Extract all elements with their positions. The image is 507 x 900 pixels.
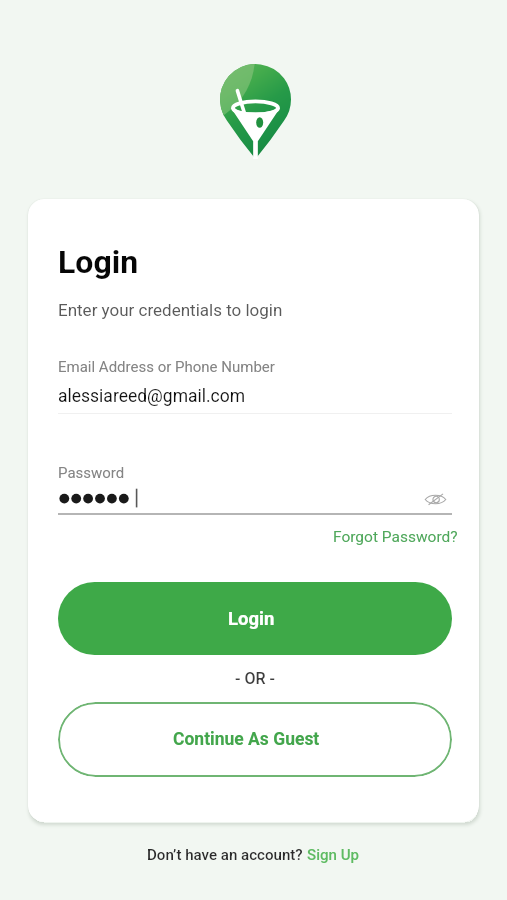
staticText: alessiareed@gmail.com [58, 386, 246, 407]
other: App logo [220, 64, 291, 159]
staticText: Continue As Guest [173, 729, 320, 750]
button[interactable]: Show password [420, 484, 450, 514]
staticText: Password [58, 464, 125, 482]
button[interactable]: Sign Up [307, 846, 360, 864]
button[interactable]: Email Address or Phone Number [58, 352, 452, 414]
staticText: Login [58, 243, 139, 281]
staticText: - OR - [235, 669, 275, 688]
button[interactable]: Forgot Password? [327, 523, 464, 551]
button[interactable]: Continue As Guest [58, 702, 452, 777]
button[interactable]: Password [58, 458, 410, 514]
staticText: Forgot Password? [333, 528, 458, 546]
staticText: Enter your credentials to login [58, 300, 283, 320]
staticText: Email Address or Phone Number [58, 358, 275, 376]
staticText: Login [228, 608, 275, 630]
button[interactable]: Login [58, 582, 452, 655]
staticText: Don’t have an account? [147, 846, 307, 864]
